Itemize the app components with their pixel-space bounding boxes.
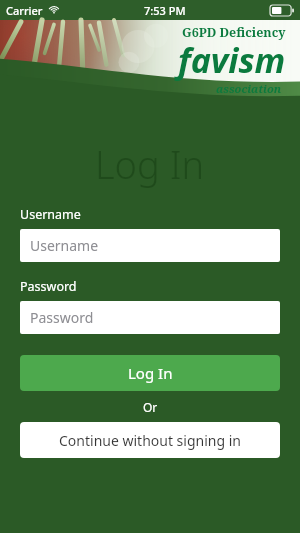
staticText: Or (143, 399, 158, 415)
staticText: Carrier (6, 3, 43, 18)
staticText: Log In (128, 363, 173, 383)
button[interactable]: Continue without signing in (20, 422, 280, 458)
button[interactable]: Password (20, 301, 280, 334)
staticText: Password (20, 278, 77, 295)
staticText: Password (30, 308, 94, 327)
staticText: association (216, 81, 282, 96)
button[interactable]: Username (20, 229, 280, 262)
staticText: 7:53 PM (144, 3, 186, 18)
staticText: Continue without signing in (59, 431, 241, 450)
staticText: favism (178, 37, 286, 83)
staticText: Username (20, 206, 81, 223)
staticText: Username (30, 236, 99, 255)
button[interactable]: Log In (20, 355, 280, 391)
staticText: G6PD Deficiency (182, 24, 286, 41)
staticText: Log In (95, 138, 205, 190)
